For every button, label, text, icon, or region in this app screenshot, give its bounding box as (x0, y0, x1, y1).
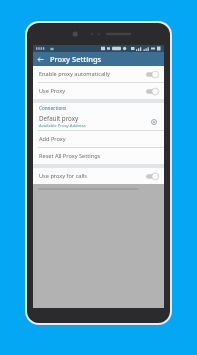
button[interactable]: Use Proxy (33, 83, 164, 99)
button[interactable]: Default proxy (33, 112, 164, 130)
staticText: Available Proxy Address (39, 123, 86, 129)
button[interactable]: Reset All Proxy Settings (33, 148, 164, 164)
button[interactable]: Toggle (145, 172, 159, 181)
button[interactable]: Toggle (145, 87, 159, 96)
staticText: Add Proxy (39, 135, 66, 143)
button[interactable]: Use proxy for calls (33, 168, 164, 184)
staticText: Use proxy for calls (39, 172, 142, 180)
button[interactable]: Back (33, 52, 47, 66)
staticText: Default proxy (39, 114, 79, 122)
staticText: Connections (39, 105, 67, 111)
button[interactable]: Enable proxy automatically (33, 66, 164, 82)
staticText: Proxy Settings (50, 54, 102, 64)
staticText: Reset All Proxy Settings (39, 152, 101, 160)
button[interactable]: Toggle (145, 70, 159, 79)
button[interactable]: Add Proxy (33, 131, 164, 147)
staticText: Use Proxy (39, 87, 142, 95)
staticText: Enable proxy automatically (39, 70, 142, 78)
button[interactable]: Select default proxy (148, 116, 159, 127)
